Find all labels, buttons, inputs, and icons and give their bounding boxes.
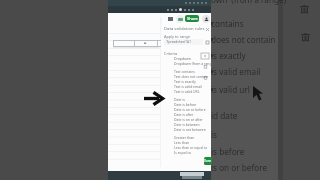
button[interactable]: Delete rule: [299, 4, 310, 15]
staticText: Criteria: [164, 51, 178, 56]
staticText: Text is valid email: [174, 84, 199, 89]
button[interactable]: Select data range: [205, 40, 210, 45]
button[interactable]: Date is between: [172, 122, 199, 127]
staticText: own' (from a range): [211, 0, 287, 5]
staticText: contains: [211, 18, 244, 29]
staticText: Date is before: [174, 102, 197, 107]
staticText: Date is: [174, 97, 185, 102]
staticText: Date is on or before: [174, 107, 199, 112]
staticText: Text is exactly: [174, 79, 196, 84]
button[interactable]: Done: [204, 157, 212, 165]
button[interactable]: Date is before: [172, 102, 199, 107]
button[interactable]: Delete rule: [300, 32, 311, 43]
staticText: Share: [187, 16, 198, 21]
button[interactable]: Remove rule: [203, 64, 208, 69]
button[interactable]: Text is exactly: [172, 79, 199, 84]
button[interactable]: Text is valid URL: [172, 89, 199, 94]
staticText: Text contains: [174, 69, 195, 74]
button[interactable]: Close: [205, 27, 209, 32]
staticText: is on or before: [211, 162, 268, 173]
staticText: is exactly: [211, 50, 246, 61]
staticText: Dropdown (from a range): [174, 61, 199, 66]
button[interactable]: Text is valid email: [172, 84, 199, 89]
button[interactable]: Date is on or after: [172, 117, 199, 122]
button[interactable]: [201, 53, 209, 59]
staticText: Data validation rules: [164, 26, 205, 32]
staticText: does not contain: [211, 34, 276, 45]
button[interactable]: Join a meeting: [176, 15, 184, 23]
button[interactable]: Text does not contain: [172, 74, 199, 79]
staticText: is before: [211, 146, 245, 157]
button[interactable]: Dropdown: [172, 56, 199, 61]
staticText: Text does not contain: [174, 74, 199, 79]
button[interactable]: Share: [185, 15, 199, 22]
button[interactable]: Is equal to: [172, 150, 199, 155]
button[interactable]: Date is not between: [172, 127, 199, 132]
button[interactable]: Greater than: [172, 135, 199, 140]
staticText: 'Spreadsheet'!A1: [166, 40, 191, 44]
button[interactable]: Version history: [167, 16, 173, 22]
staticText: Date is not between: [174, 127, 199, 132]
staticText: Is equal to: [174, 150, 191, 155]
button[interactable]: Text contains: [172, 69, 199, 74]
staticText: is valid url: [211, 84, 250, 95]
staticText: id date: [211, 110, 238, 121]
button[interactable]: Google account: [202, 15, 210, 23]
staticText: Apply to range: [164, 34, 191, 39]
button[interactable]: Less than: [172, 140, 199, 145]
button[interactable]: Date is after: [172, 112, 199, 117]
button[interactable]: Date is on or before: [172, 107, 199, 112]
button[interactable]: Date is: [172, 97, 199, 102]
button[interactable]: Less than or equal to: [172, 145, 199, 150]
staticText: Done: [204, 159, 212, 163]
staticText: is: [211, 129, 218, 140]
button[interactable]: Remove rule: [203, 75, 208, 80]
staticText: is valid email: [211, 66, 261, 77]
staticText: Date is between: [174, 122, 199, 127]
staticText: Dropdown: [174, 56, 191, 61]
staticText: Text is valid URL: [174, 89, 199, 94]
staticText: Date is on or after: [174, 117, 199, 122]
button[interactable]: Dropdown (from a range): [172, 61, 199, 66]
staticText: Date is after: [174, 112, 194, 117]
staticText: Less than or equal to: [174, 145, 199, 150]
button[interactable]: 'Spreadsheet'!A1: [164, 39, 203, 45]
staticText: Less than: [174, 140, 190, 145]
staticText: Greater than: [174, 135, 195, 140]
